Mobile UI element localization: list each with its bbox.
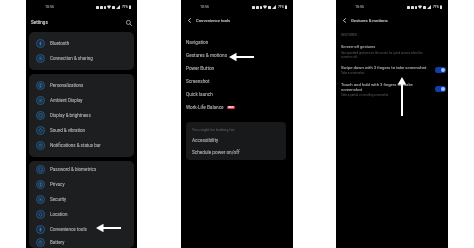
staticText: Swipe down with 3 fingers to take screen… [341,65,427,70]
button[interactable]: Power Button [181,62,293,75]
staticText: 10:56 [45,5,55,9]
staticText: Battery [50,240,65,245]
staticText: Screenshot [186,79,210,85]
button[interactable]: Screenshot [181,75,293,88]
button[interactable]: Security [29,192,134,207]
staticText: 10:56 [200,5,210,9]
staticText: Security [50,197,67,202]
button[interactable]: Swipe down with 3 fingers to take screen… [336,65,448,74]
staticText: Ambient Display [50,98,83,103]
staticText: Sound & vibration [50,128,86,133]
button[interactable]: Location [29,207,134,222]
staticText: Settings [31,20,48,25]
staticText: Personalizations [50,83,84,88]
staticText: GESTURES [341,33,358,37]
button[interactable]: Privacy [29,177,134,192]
staticText: 71% [278,5,284,9]
button[interactable]: Display & brightness [29,108,134,123]
button[interactable]: Bluetooth [29,36,134,51]
button[interactable]: Work-Life Balance [181,101,293,114]
button[interactable]: Back [185,16,193,24]
button[interactable]: Personalizations [29,78,134,93]
staticText: NEW [228,106,234,109]
staticText: Navigation [186,40,209,46]
staticText: Connection & sharing [50,56,93,61]
staticText: Convenience tools [196,18,231,23]
button[interactable]: Touch and hold with 3 fingers to make sc… [336,82,448,96]
staticText: 71% [122,5,128,9]
button[interactable]: Quick launch [181,88,293,101]
staticText: Take a screenshot [341,71,365,74]
staticText: Convenience tools [50,227,87,232]
staticText: 10:56 [355,5,365,9]
staticText: Use specified gestures on the screen for… [341,51,429,59]
staticText: Touch and hold with 3 fingers to make sc… [341,82,432,92]
staticText: Notifications & status bar [50,143,101,148]
button[interactable]: Convenience tools [29,222,134,237]
staticText: You might be looking for: [192,127,236,132]
staticText: Power Button [186,66,215,72]
button[interactable]: Gestures & motions [181,49,293,62]
staticText: 71% [433,5,439,9]
button[interactable]: Navigation [181,36,293,49]
staticText: Gestures & motions [351,18,388,23]
button[interactable]: Connection & sharing [29,51,134,66]
button[interactable]: Ambient Display [29,93,134,108]
button[interactable]: Battery [29,237,134,247]
staticText: Bluetooth [50,41,70,46]
staticText: Password & biometrics [50,167,97,172]
button[interactable]: Password & biometrics [29,162,134,177]
staticText: Privacy [50,182,65,187]
button[interactable]: Back [340,16,348,24]
button[interactable]: Screen-off gestures [336,44,448,59]
button[interactable]: Notifications & status bar [29,138,134,153]
staticText: Work-Life Balance [186,105,224,111]
staticText: Display & brightness [50,113,91,118]
staticText: Screen-off gestures [341,44,376,49]
staticText: Quick launch [186,92,213,98]
button[interactable]: Schedule power on/off [192,150,240,156]
staticText: Take a partial or scrolling screenshot [341,93,389,96]
staticText: Location [50,212,68,217]
button[interactable]: Sound & vibration [29,123,134,138]
button[interactable]: Search [124,18,133,27]
button[interactable]: Accessibility [192,138,219,144]
staticText: Gestures & motions [186,53,228,59]
